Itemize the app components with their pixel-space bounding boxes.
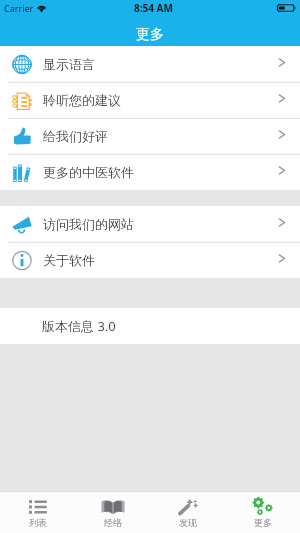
staticText: 关于软件 [43,252,95,268]
button[interactable]: 更多 [225,492,300,533]
staticText: 给我们好评 [43,128,108,144]
staticText: 聆听您的建议 [43,92,121,108]
button[interactable]: 更多的中医软件 [0,154,300,190]
staticText: 更多 [136,26,164,44]
staticText: Carrier [4,2,34,14]
staticText: 列表 [29,517,47,528]
staticText: 发现 [179,517,197,528]
button[interactable]: 经络 [75,492,150,533]
button[interactable]: 聆听您的建议 [0,82,300,118]
button[interactable]: 访问我们的网站 [0,206,300,242]
staticText: 更多的中医软件 [43,164,134,180]
button[interactable]: 关于软件 [0,242,300,278]
button[interactable]: 发现 [150,492,225,533]
staticText: 经络 [104,517,122,528]
staticText: 更多 [254,517,272,528]
button[interactable]: 给我们好评 [0,118,300,154]
button[interactable]: 列表 [0,492,75,533]
staticText: 8:54 AM [134,1,173,15]
staticText: 显示语言 [43,56,95,72]
staticText: 版本信息 3.0 [42,317,116,335]
button[interactable]: 显示语言 [0,46,300,82]
staticText: 访问我们的网站 [43,216,134,232]
